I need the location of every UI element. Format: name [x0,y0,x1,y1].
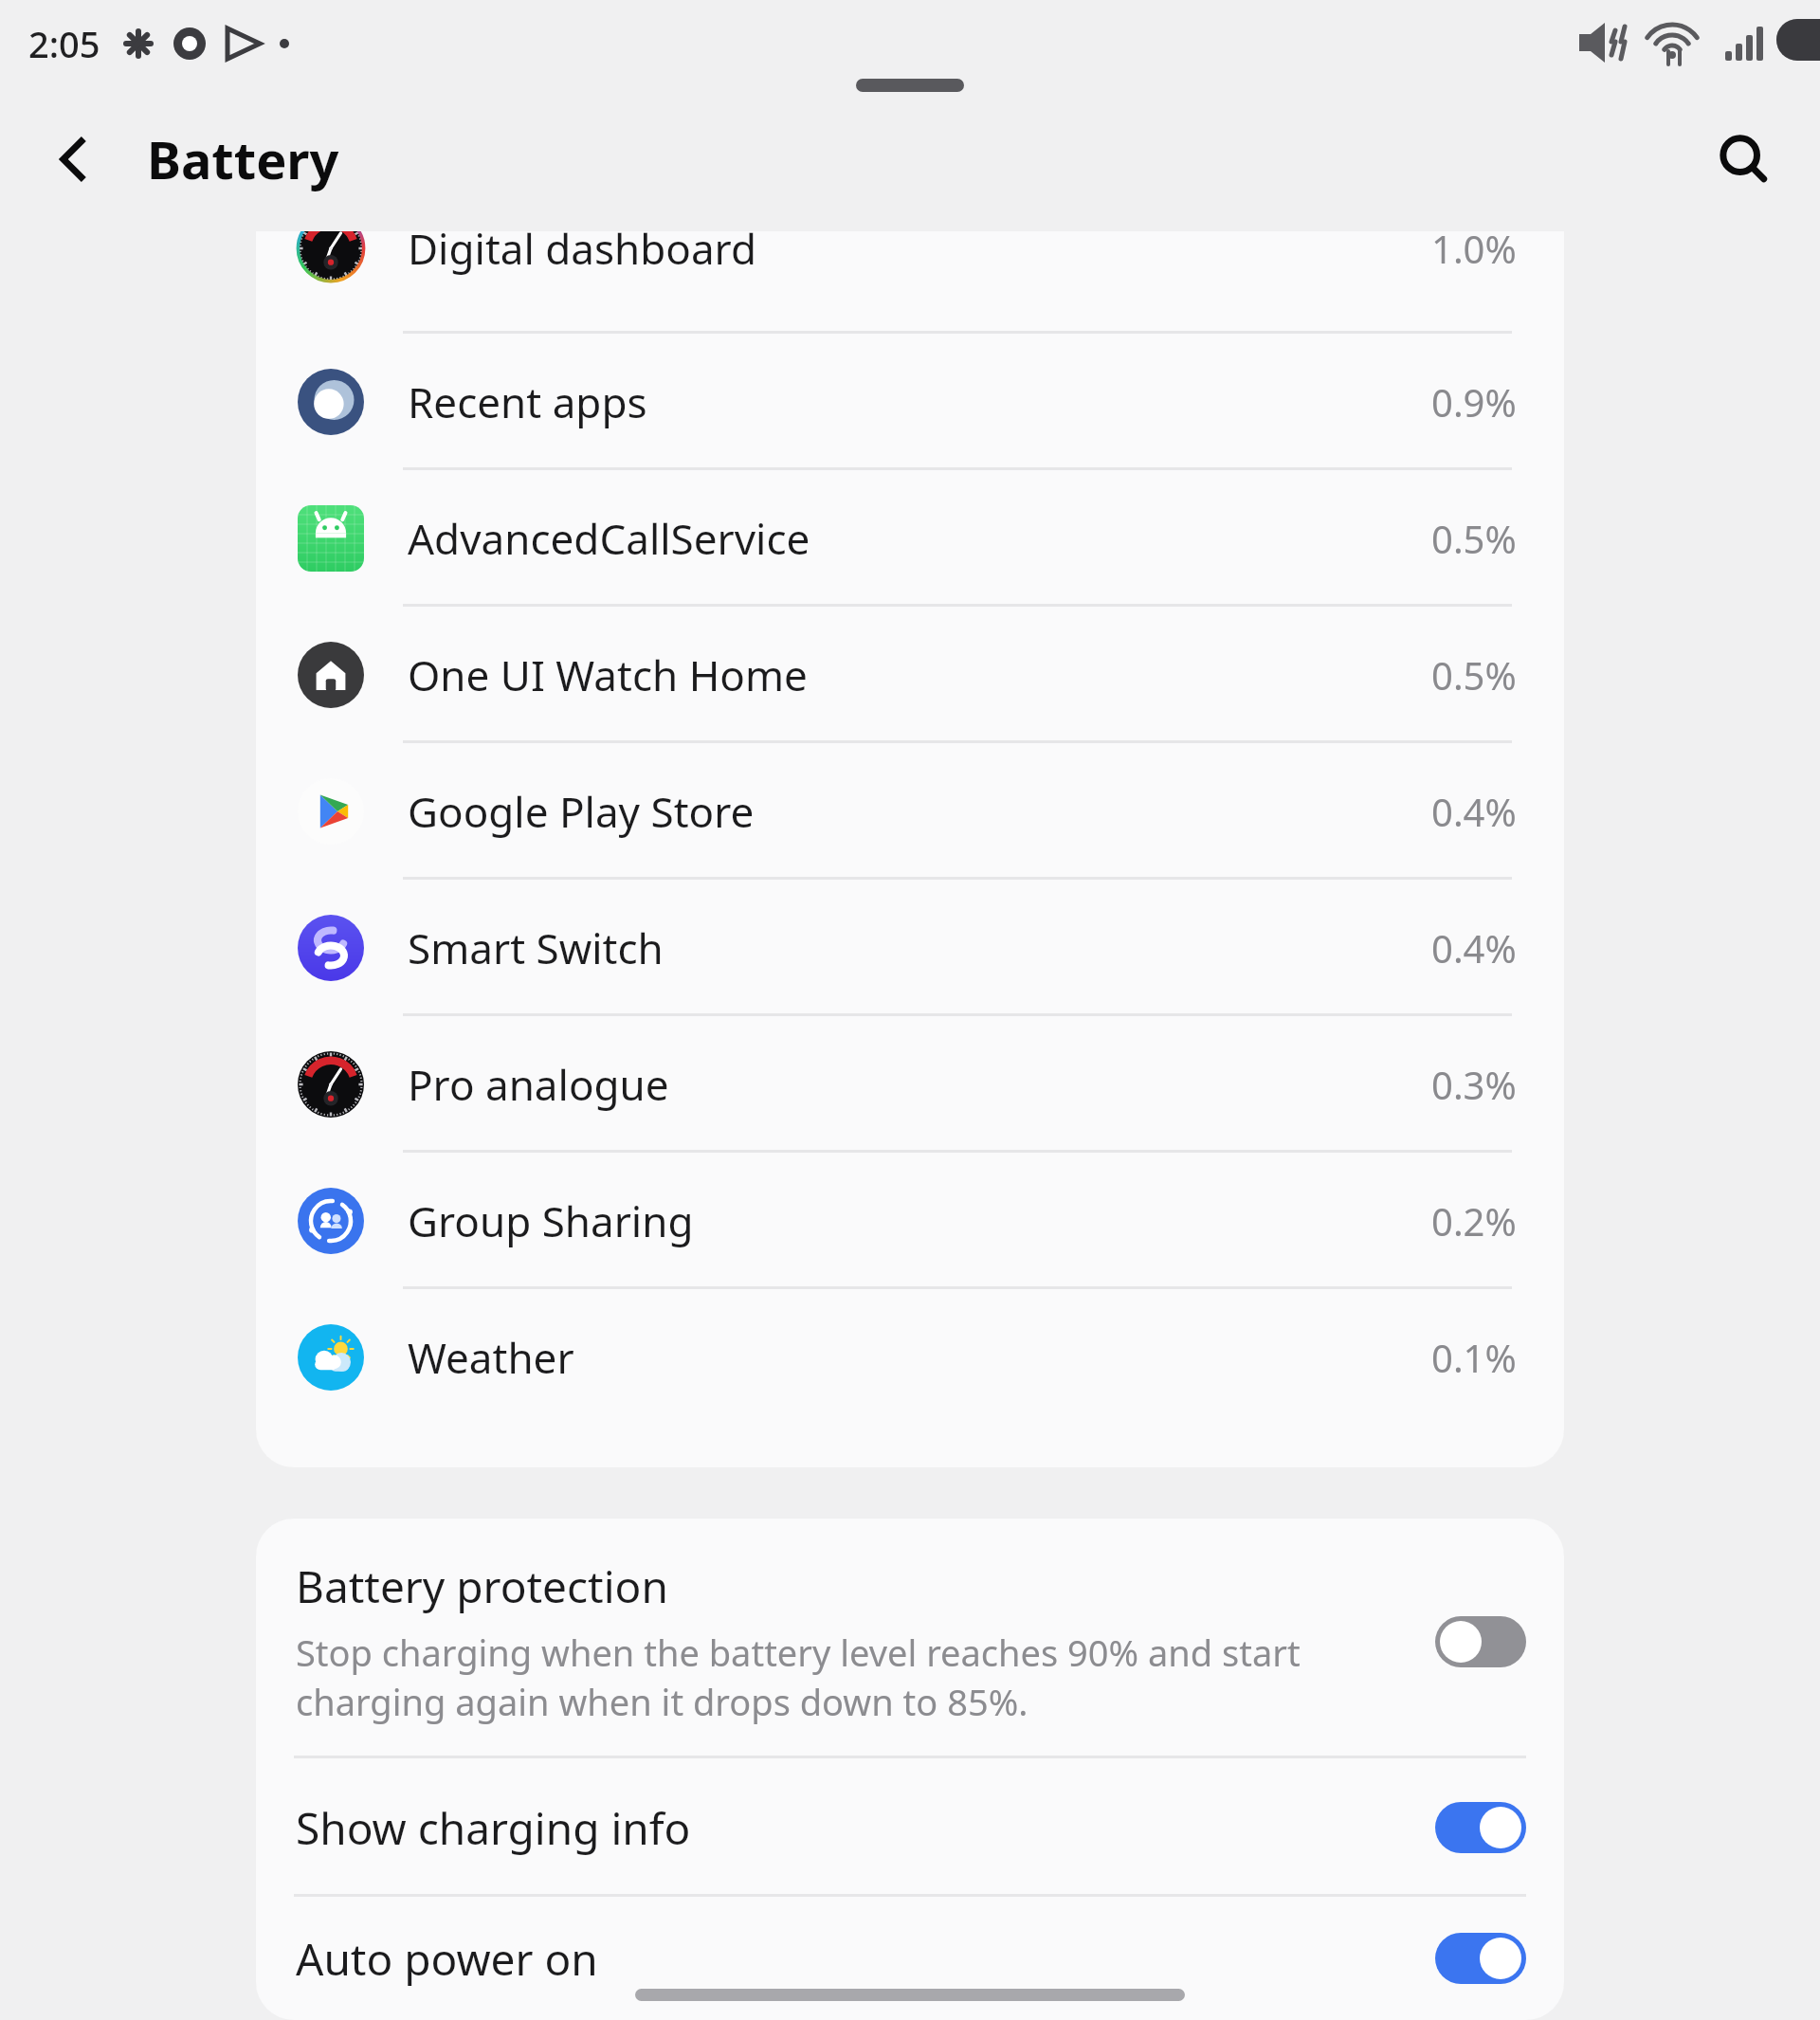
staticText: Battery [147,124,339,194]
button[interactable]: Group Sharing [256,1153,1564,1289]
staticText: Google Play Store [408,783,755,840]
staticText: One UI Watch Home [408,646,808,703]
button[interactable]: Recent apps [256,334,1564,470]
staticText: Stop charging when the battery level rea… [296,1628,1412,1726]
staticText: 1.0% [1431,231,1517,274]
button[interactable]: Show charging info [256,1758,1564,1897]
staticText: 0.1% [1431,1332,1517,1383]
button[interactable]: Search [1702,118,1786,201]
button[interactable]: Pro analogue [256,1016,1564,1153]
staticText: Battery protection [296,1556,668,1616]
button[interactable]: Back [34,119,114,199]
staticText: Auto power on [296,1929,1435,1989]
staticText: Recent apps [408,373,647,430]
staticText: Smart Switch [408,919,664,976]
staticText: 0.9% [1431,376,1517,428]
button[interactable]: Battery protection [256,1519,1564,1758]
button[interactable]: Auto power on [256,1897,1564,2020]
staticText: Weather [408,1329,574,1386]
button[interactable]: Off [1435,1616,1526,1667]
button[interactable]: AdvancedCallService [256,470,1564,607]
staticText: 0.2% [1431,1195,1517,1247]
staticText: Show charging info [296,1798,1435,1858]
staticText: 2:05 [28,19,100,68]
staticText: 0.4% [1431,922,1517,974]
button[interactable]: One UI Watch Home [256,607,1564,743]
button[interactable]: Weather [256,1289,1564,1426]
staticText: Group Sharing [408,1192,694,1249]
button[interactable]: On [1435,1802,1526,1853]
staticText: 0.5% [1431,513,1517,564]
staticText: Pro analogue [408,1056,669,1113]
staticText: 0.3% [1431,1059,1517,1110]
button[interactable]: Smart Switch [256,880,1564,1016]
staticText: 0.5% [1431,649,1517,701]
button[interactable]: Google Play Store [256,743,1564,880]
staticText: Digital dashboard [408,231,756,277]
staticText: AdvancedCallService [408,510,810,567]
staticText: 0.4% [1431,786,1517,837]
button[interactable]: On [1435,1933,1526,1984]
